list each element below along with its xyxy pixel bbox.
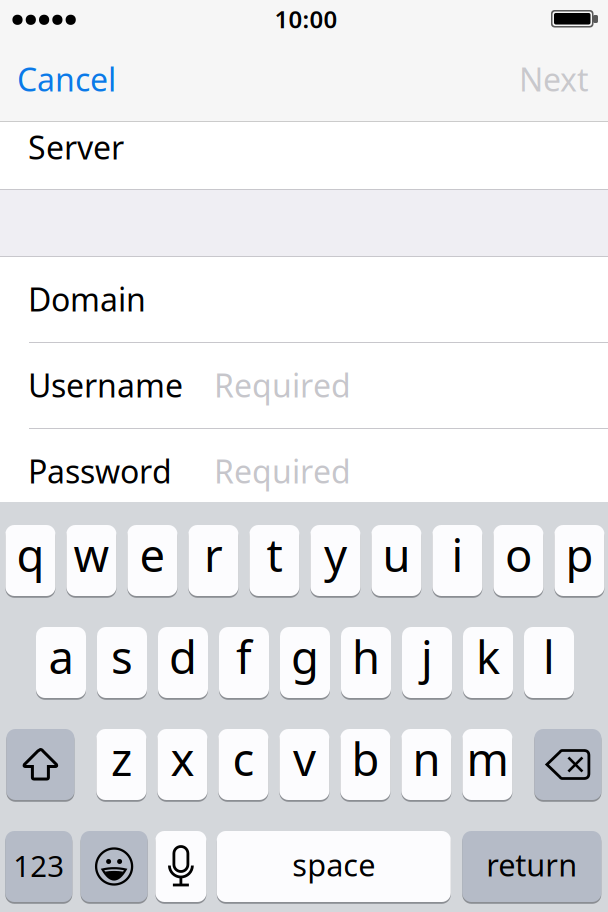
button[interactable]: e [127,524,177,597]
staticText: m [466,728,508,789]
staticText: w [73,524,109,585]
staticText: n [412,728,440,789]
button[interactable]: k [463,626,513,699]
button[interactable]: return [462,830,601,903]
staticText: Required [214,364,351,406]
staticText: p [565,524,593,585]
button[interactable]: l [524,626,574,699]
button[interactable]: s [97,626,147,699]
button[interactable]: g [280,626,330,699]
staticText: y [324,524,347,585]
staticText: o [505,524,532,585]
staticText: Server [28,126,124,168]
staticText: Cancel [17,58,116,100]
staticText: Required [214,450,351,492]
button[interactable]: n [401,728,451,801]
staticText: h [352,626,380,687]
staticText: f [236,626,252,687]
button[interactable]: x [157,728,207,801]
button[interactable]: f [219,626,269,699]
button[interactable]: o [493,524,543,597]
staticText: space [292,844,375,885]
button[interactable]: j [402,626,452,699]
button[interactable]: Emoji [81,830,148,903]
staticText: u [382,524,410,585]
button[interactable]: m [462,728,512,801]
button[interactable]: Dictation [155,830,206,903]
staticText: Domain [28,278,146,320]
button[interactable]: Shift [6,728,74,801]
button[interactable]: Delete [534,728,601,801]
button[interactable]: 123 [5,830,72,903]
button[interactable]: Username [0,342,608,428]
button[interactable]: h [341,626,391,699]
staticText: d [169,626,197,687]
staticText: Password [28,450,172,492]
staticText: t [266,524,282,585]
staticText: Next [519,58,589,100]
staticText: b [351,728,379,789]
button[interactable]: p [554,524,604,597]
staticText: k [476,626,500,687]
button[interactable]: Next [458,41,608,121]
button[interactable]: i [432,524,482,597]
button[interactable]: c [218,728,268,801]
staticText: a [48,626,73,687]
button[interactable]: z [96,728,146,801]
staticText: c [232,728,254,789]
staticText: z [111,728,132,789]
button[interactable]: Password [0,429,608,502]
staticText: j [421,626,433,687]
staticText: e [139,524,165,585]
staticText: s [111,626,133,687]
button[interactable]: y [310,524,360,597]
button[interactable]: r [188,524,238,597]
button[interactable]: d [158,626,208,699]
button[interactable]: Server [0,122,608,189]
staticText: x [170,728,194,789]
staticText: q [16,524,44,585]
staticText: Username [28,364,183,406]
button[interactable]: a [36,626,86,699]
button[interactable]: space [217,830,451,903]
staticText: g [291,626,319,687]
button[interactable]: b [340,728,390,801]
staticText: r [204,524,223,585]
button[interactable]: v [279,728,329,801]
button[interactable]: w [66,524,116,597]
staticText: return [486,844,577,885]
staticText: l [543,626,555,687]
button[interactable]: t [249,524,299,597]
staticText: v [293,728,316,789]
button[interactable]: Cancel [0,41,160,121]
staticText: i [451,524,463,585]
button[interactable]: u [371,524,421,597]
staticText: 10:00 [274,3,337,35]
button[interactable]: Domain [0,257,608,342]
staticText: 123 [13,846,64,885]
button[interactable]: q [5,524,55,597]
